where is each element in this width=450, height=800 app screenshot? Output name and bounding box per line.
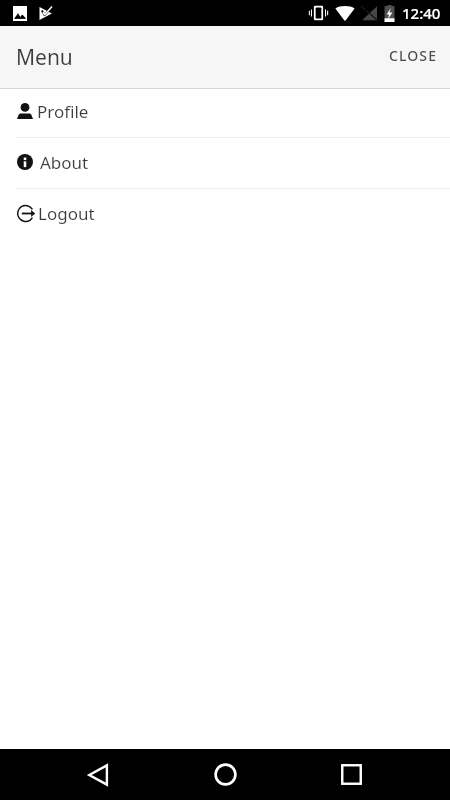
button[interactable]: Profile (0, 89, 450, 137)
button[interactable]: Logout (0, 189, 450, 239)
staticText: Menu (16, 43, 73, 72)
button[interactable]: Home (201, 750, 250, 799)
staticText: CLOSE (389, 46, 438, 65)
staticText: About (40, 151, 89, 174)
button[interactable]: CLOSE (377, 34, 450, 77)
button[interactable]: About (0, 138, 450, 188)
button[interactable]: Recent apps (327, 750, 376, 799)
staticText: Logout (38, 202, 95, 225)
button[interactable]: Back (74, 750, 123, 799)
staticText: 12:40 (402, 3, 441, 23)
staticText: Profile (37, 100, 89, 123)
